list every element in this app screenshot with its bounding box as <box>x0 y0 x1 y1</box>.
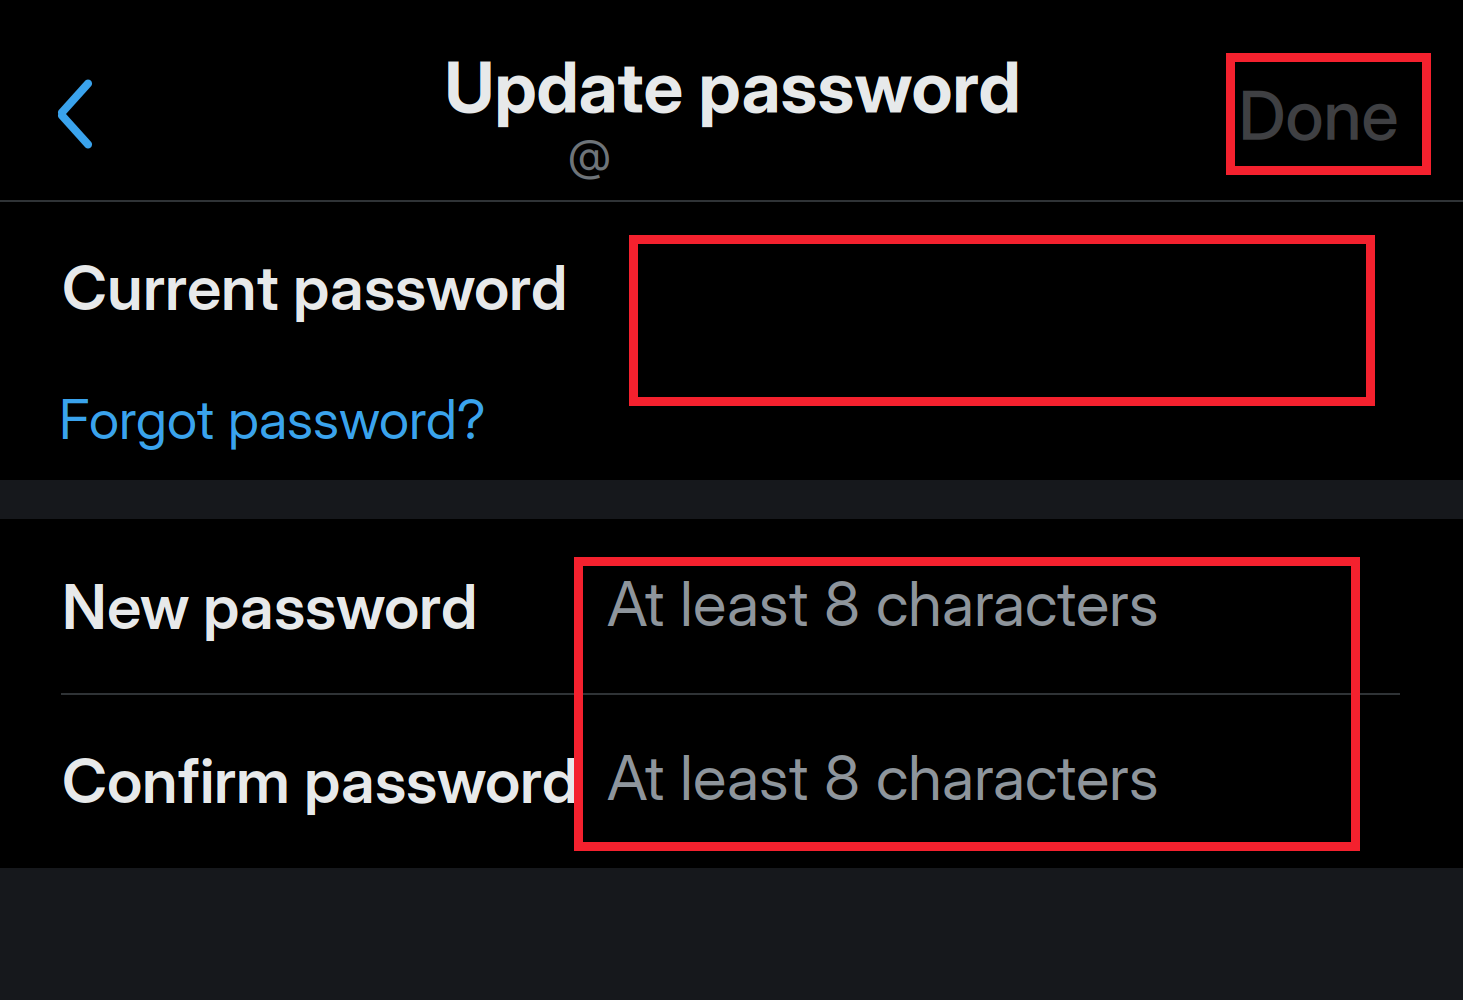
button[interactable]: Back <box>5 44 145 184</box>
button[interactable]: Done <box>1216 54 1421 176</box>
staticText: Current password <box>62 250 567 325</box>
staticText: Done <box>1238 74 1398 156</box>
staticText: Update password <box>444 44 1020 129</box>
staticText: Forgot password? <box>59 386 486 452</box>
staticText: @ <box>568 128 611 182</box>
button[interactable]: Current password <box>0 202 1463 362</box>
staticText: At least 8 characters <box>607 566 1158 641</box>
button[interactable]: New password <box>0 519 1463 693</box>
staticText: Confirm password <box>62 743 578 818</box>
staticText: At least 8 characters <box>607 740 1158 815</box>
button[interactable]: Confirm password <box>0 693 1463 867</box>
button[interactable]: Forgot password? <box>59 372 510 466</box>
staticText: New password <box>62 569 477 644</box>
